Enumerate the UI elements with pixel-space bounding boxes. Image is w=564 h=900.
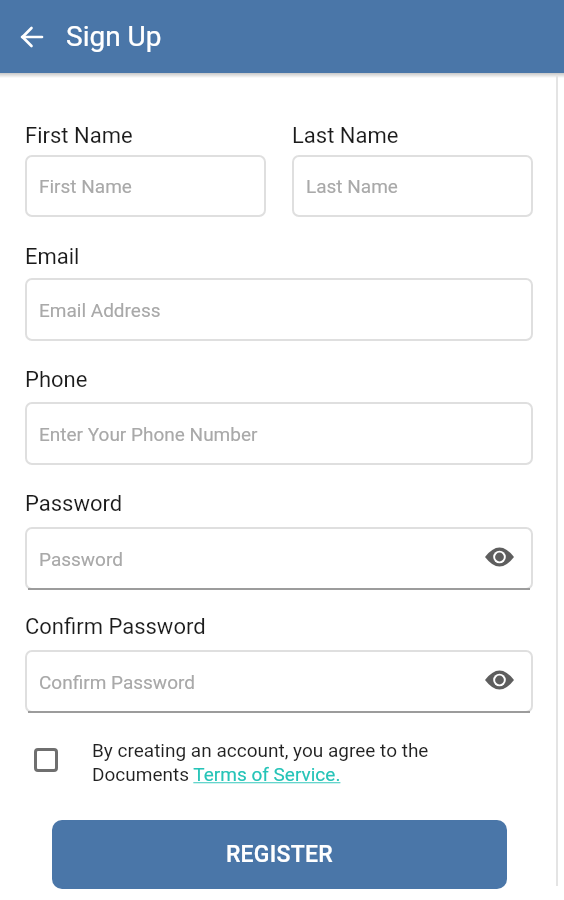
button[interactable]: Enter Your Phone Number (25, 402, 533, 465)
staticText: First Name (39, 175, 132, 197)
staticText: Password (39, 548, 123, 570)
staticText: Email Address (39, 299, 161, 321)
button[interactable]: Confirm Password (25, 650, 533, 713)
staticText: First Name (25, 123, 133, 149)
staticText: Sign Up (66, 20, 162, 53)
staticText: Email (25, 244, 80, 270)
button[interactable]: Email Address (25, 278, 533, 341)
staticText: Enter Your Phone Number (39, 423, 258, 445)
button[interactable]: Last Name (292, 155, 533, 217)
button[interactable]: REGISTER (52, 820, 507, 889)
staticText: Last Name (306, 175, 398, 197)
button[interactable]: Password (25, 527, 533, 590)
staticText: Password (25, 491, 123, 517)
staticText: REGISTER (226, 841, 333, 868)
staticText: Phone (25, 367, 88, 393)
staticText: Confirm Password (39, 671, 195, 693)
button[interactable] (20, 25, 44, 49)
staticText: Last Name (292, 123, 399, 149)
staticText: Confirm Password (25, 614, 206, 640)
button[interactable]: First Name (25, 155, 266, 217)
button[interactable]: By creating an account, you agree to the… (92, 739, 429, 786)
button[interactable] (34, 748, 58, 772)
